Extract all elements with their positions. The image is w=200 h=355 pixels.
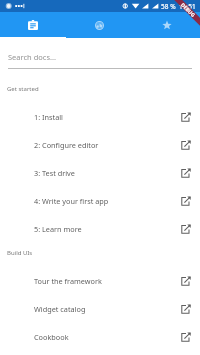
button[interactable]: 1: Install	[0, 103, 200, 131]
button[interactable]: 5: Learn more	[0, 215, 200, 243]
button[interactable]: Widget catalog	[0, 295, 200, 323]
staticText: 5: Learn more	[34, 224, 82, 234]
staticText: 3: Test drive	[34, 168, 75, 178]
staticText: 1: Install	[34, 112, 63, 122]
staticText: Get started	[7, 85, 39, 93]
staticText: Search docs...	[8, 52, 57, 62]
staticText: 4: Write your first app	[34, 196, 109, 206]
button[interactable]: Favourites	[133, 12, 200, 38]
button[interactable]: Tour the framework	[0, 267, 200, 295]
button[interactable]: Docs	[0, 12, 66, 38]
button[interactable]: Cookbook	[0, 323, 200, 351]
other: Open in browser	[181, 224, 191, 234]
staticText: 15:51	[179, 2, 196, 11]
button[interactable]: Search docs...	[0, 52, 200, 69]
other: Open in browser	[181, 304, 191, 314]
staticText: Widget catalog	[34, 304, 86, 314]
staticText: 58 %	[161, 2, 176, 11]
staticText: 2: Configure editor	[34, 140, 99, 150]
staticText: Build UIs	[7, 249, 33, 257]
button[interactable]: 2: Configure editor	[0, 131, 200, 159]
other: Open in browser	[181, 332, 191, 342]
button[interactable]: 4: Write your first app	[0, 187, 200, 215]
other: Open in browser	[181, 276, 191, 286]
staticText: Cookbook	[34, 332, 69, 342]
other: Open in browser	[181, 140, 191, 150]
other: Open in browser	[181, 196, 191, 206]
other: Open in browser	[181, 112, 191, 122]
other: Open in browser	[181, 168, 191, 178]
staticText: DEBUG	[179, 2, 197, 19]
button[interactable]: 3: Test drive	[0, 159, 200, 187]
button[interactable]: Web	[66, 12, 133, 38]
staticText: Tour the framework	[34, 276, 102, 286]
